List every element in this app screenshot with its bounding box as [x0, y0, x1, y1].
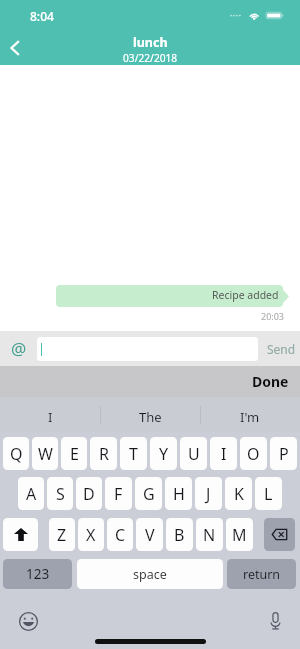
button[interactable]: N: [196, 518, 223, 551]
button[interactable]: A: [18, 477, 44, 510]
button[interactable]: L: [255, 477, 282, 510]
button[interactable]: I: [210, 437, 237, 470]
staticText: D: [83, 483, 95, 505]
staticText: 8:04: [30, 8, 54, 24]
staticText: U: [188, 443, 200, 465]
staticText: L: [264, 483, 273, 505]
staticText: lunch: [133, 34, 168, 51]
button[interactable]: M: [226, 518, 253, 551]
button[interactable]: Q: [3, 437, 29, 470]
button[interactable]: Backspace: [264, 518, 295, 551]
button[interactable]: W: [32, 437, 58, 470]
button[interactable]: return: [227, 559, 296, 589]
button[interactable]: S: [47, 477, 73, 510]
button[interactable]: V: [136, 518, 163, 551]
staticText: Z: [57, 524, 67, 546]
button[interactable]: D: [76, 477, 102, 510]
button[interactable]: space: [77, 559, 223, 589]
button[interactable]: U: [180, 437, 207, 470]
button[interactable]: Back: [0, 30, 30, 66]
staticText: H: [173, 483, 185, 505]
button[interactable]: I'm: [200, 397, 300, 432]
staticText: N: [203, 524, 216, 546]
staticText: The: [139, 408, 162, 426]
button[interactable]: Done: [241, 366, 300, 397]
staticText: Y: [159, 443, 169, 465]
button[interactable]: H: [165, 477, 192, 510]
button[interactable]: E: [61, 437, 87, 470]
button[interactable]: G: [135, 477, 162, 510]
button[interactable]: K: [225, 477, 252, 510]
staticText: K: [234, 483, 244, 505]
staticText: E: [70, 443, 79, 465]
staticText: I: [221, 443, 227, 465]
button[interactable]: [37, 337, 258, 361]
staticText: I'm: [240, 408, 260, 426]
staticText: F: [114, 483, 123, 505]
button[interactable]: Mention: [0, 331, 37, 366]
button[interactable]: O: [240, 437, 267, 470]
staticText: Send: [267, 341, 296, 357]
button[interactable]: 123: [3, 559, 72, 589]
staticText: T: [129, 443, 138, 465]
button[interactable]: Shift: [3, 518, 38, 551]
staticText: X: [86, 524, 96, 546]
staticText: P: [279, 443, 289, 465]
button[interactable]: I: [0, 397, 100, 432]
button[interactable]: Y: [150, 437, 177, 470]
staticText: @: [11, 337, 27, 360]
staticText: 03/22/2018: [123, 51, 178, 65]
button[interactable]: Recipe added: [56, 285, 283, 307]
button[interactable]: Send: [258, 331, 300, 366]
button[interactable]: Dictation: [262, 608, 288, 634]
staticText: W: [38, 443, 53, 465]
button[interactable]: C: [107, 518, 133, 551]
staticText: 20:03: [261, 310, 285, 322]
staticText: 123: [26, 565, 50, 583]
staticText: M: [232, 524, 247, 546]
staticText: space: [133, 566, 167, 583]
button[interactable]: P: [270, 437, 297, 470]
button[interactable]: Z: [49, 518, 75, 551]
staticText: A: [26, 483, 37, 505]
staticText: V: [145, 524, 155, 546]
button[interactable]: The: [100, 397, 200, 432]
button[interactable]: X: [78, 518, 104, 551]
staticText: C: [115, 524, 126, 546]
staticText: S: [56, 483, 65, 505]
staticText: Recipe added: [212, 288, 279, 302]
button[interactable]: J: [195, 477, 222, 510]
button[interactable]: F: [105, 477, 132, 510]
staticText: G: [143, 483, 155, 505]
staticText: return: [243, 566, 281, 583]
staticText: Q: [10, 443, 23, 465]
button[interactable]: R: [90, 437, 117, 470]
staticText: Done: [252, 372, 289, 391]
staticText: B: [174, 524, 185, 546]
staticText: O: [247, 443, 260, 465]
staticText: J: [206, 483, 211, 505]
staticText: R: [99, 443, 109, 465]
staticText: I: [48, 408, 53, 426]
button[interactable]: T: [120, 437, 147, 470]
button[interactable]: Emoji: [15, 608, 41, 634]
button[interactable]: B: [166, 518, 193, 551]
